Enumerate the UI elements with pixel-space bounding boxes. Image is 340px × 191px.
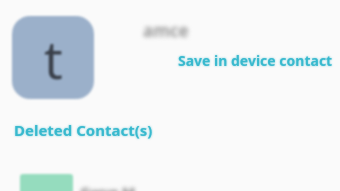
staticText: Deleted Contact(s) bbox=[14, 120, 153, 140]
button[interactable]: Contact avatar bbox=[12, 16, 94, 99]
staticText: Deleted Contact(s) bbox=[14, 120, 153, 140]
button[interactable]: Deleted contact avatar bbox=[20, 174, 73, 191]
staticText: Save in device contact bbox=[178, 51, 333, 70]
staticText: Save in device contact bbox=[178, 51, 333, 70]
staticText: Gwve M bbox=[80, 183, 136, 191]
staticText: t bbox=[44, 23, 63, 94]
staticText: amce bbox=[143, 19, 189, 42]
button[interactable]: Save in device contact bbox=[178, 51, 333, 70]
